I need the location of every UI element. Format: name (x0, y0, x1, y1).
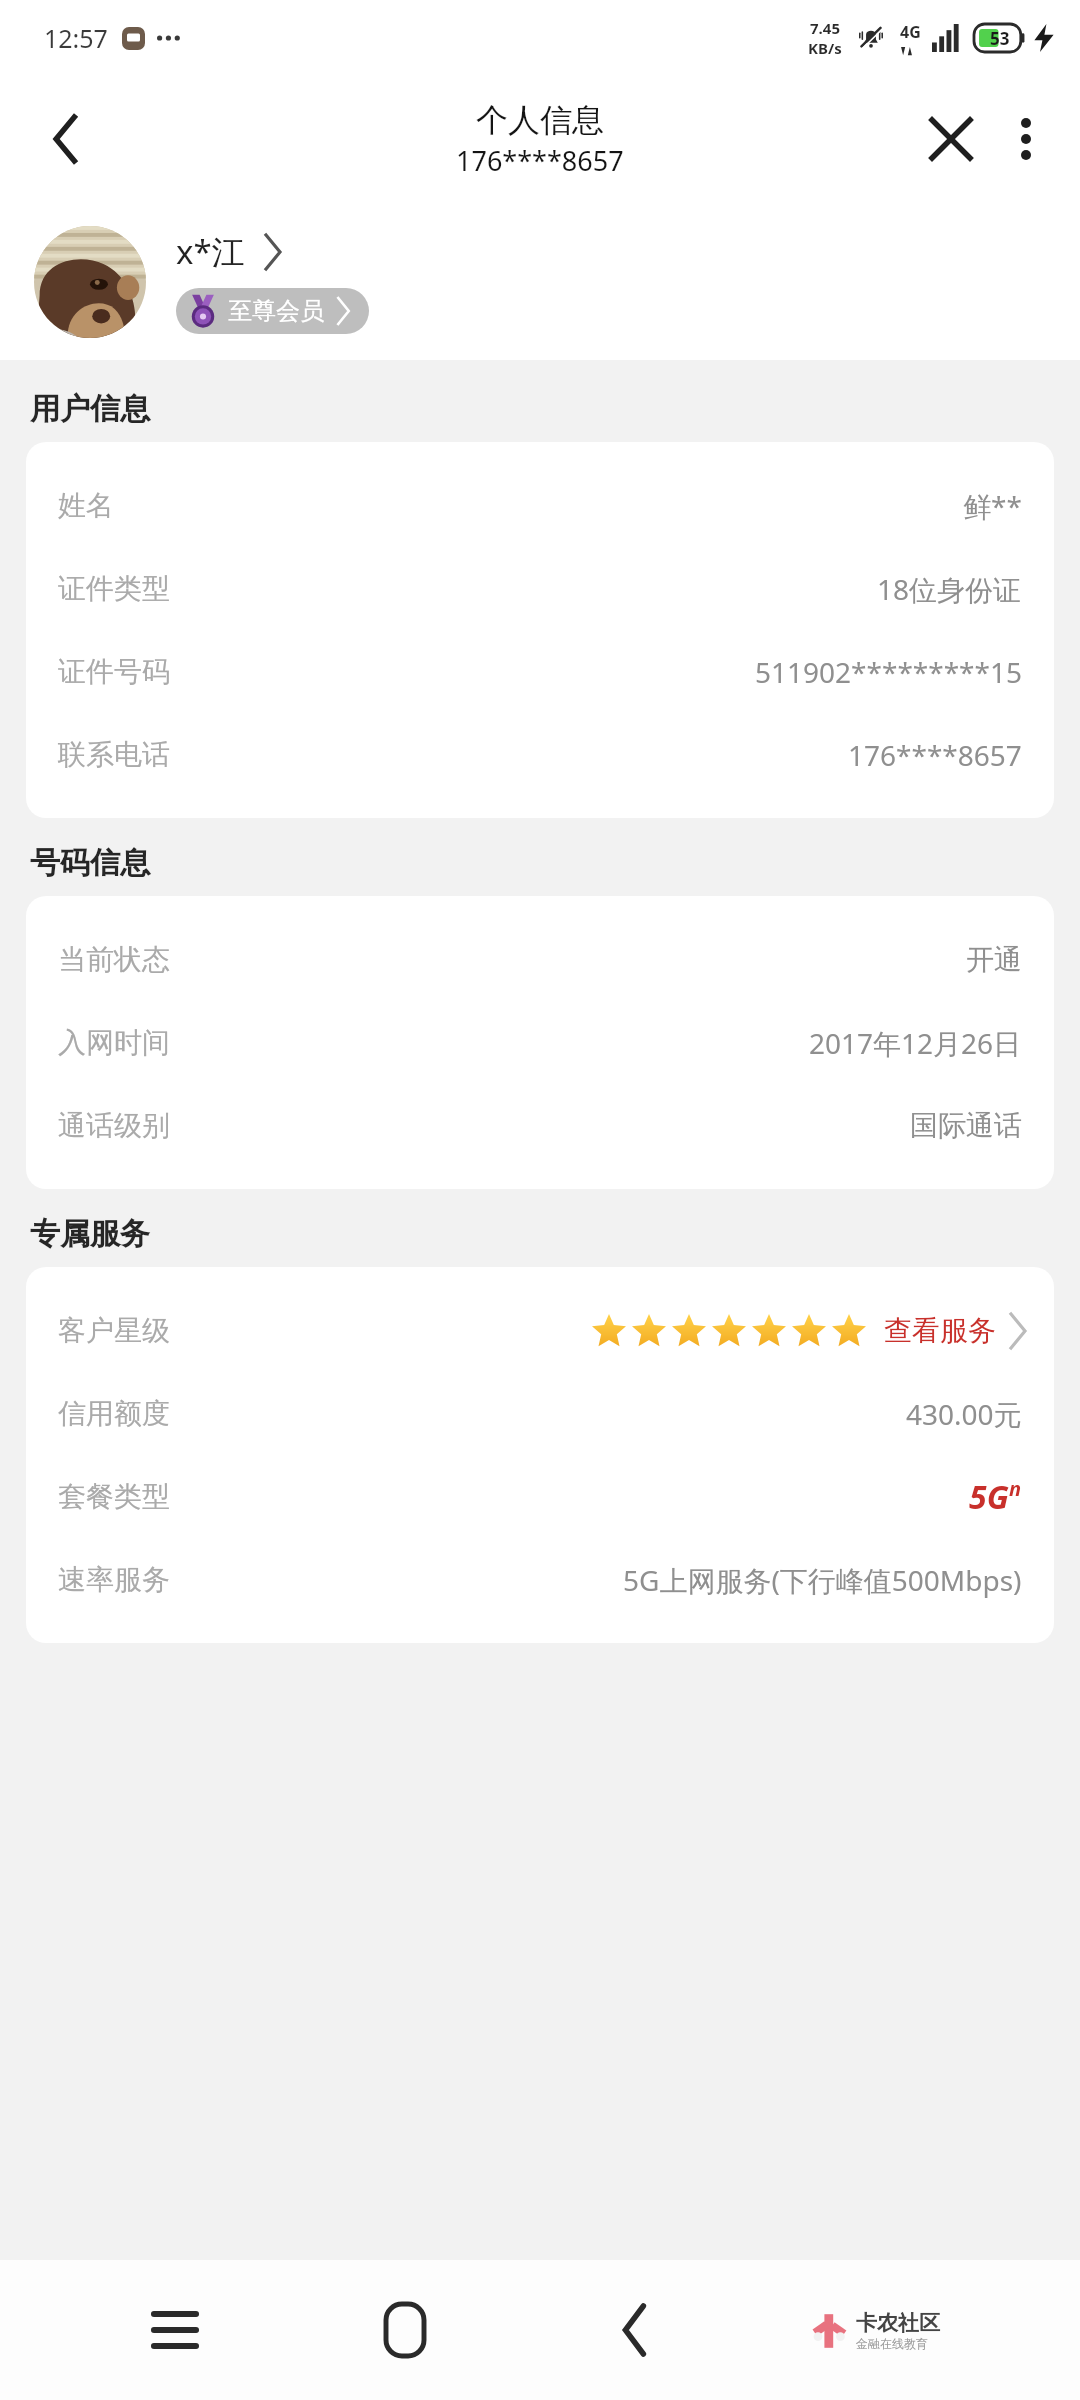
staticText: 当前状态 (58, 942, 170, 977)
staticText: x*江 (176, 229, 245, 274)
staticText: 鲜** (963, 487, 1022, 525)
staticText: 证件号码 (58, 654, 170, 689)
staticText: 姓名 (58, 488, 114, 523)
button[interactable]: 通话级别 (26, 1084, 1054, 1167)
button[interactable]: 姓名 (26, 464, 1054, 547)
button[interactable]: 客户星级 (26, 1289, 1054, 1372)
button[interactable]: Close (912, 100, 990, 178)
staticText: 18位身份证 (877, 570, 1022, 608)
staticText: n (1009, 1475, 1022, 1502)
staticText: 430.00元 (906, 1395, 1022, 1433)
staticText: 176****8657 (456, 142, 624, 179)
staticText: 2017年12月26日 (809, 1024, 1022, 1062)
staticText: 金融在线教育 (856, 2336, 928, 2351)
staticText: KB/s (808, 38, 842, 58)
staticText: 7.45 (810, 18, 840, 38)
button[interactable]: 至尊会员 (176, 288, 369, 334)
button[interactable]: More options (990, 103, 1062, 175)
staticText: 国际通话 (910, 1108, 1022, 1143)
staticText: 速率服务 (58, 1562, 170, 1597)
button[interactable]: Back (580, 2275, 690, 2385)
staticText: 专属服务 (30, 1215, 150, 1253)
staticText: 套餐类型 (58, 1479, 170, 1514)
button[interactable]: 当前状态 (26, 918, 1054, 1001)
button[interactable]: 套餐类型 (26, 1455, 1054, 1538)
staticText: 证件类型 (58, 571, 170, 606)
button[interactable]: 证件号码 (26, 630, 1054, 713)
button[interactable]: 速率服务 (26, 1538, 1054, 1621)
staticText: 信用额度 (58, 1396, 170, 1431)
staticText: 511902*********15 (755, 653, 1022, 691)
staticText: 客户星级 (58, 1313, 170, 1348)
staticText: 开通 (966, 942, 1022, 977)
staticText: 4G (900, 21, 921, 43)
staticText: 5G (969, 1475, 1009, 1519)
staticText: 至尊会员 (228, 296, 324, 326)
button[interactable]: Home (350, 2275, 460, 2385)
staticText: 通话级别 (58, 1108, 170, 1143)
staticText: 卡农社区 (856, 2310, 940, 2336)
staticText: 查看服务 (884, 1313, 996, 1348)
button[interactable]: 入网时间 (26, 1001, 1054, 1084)
button[interactable]: Back (26, 99, 106, 179)
button[interactable]: Recent apps (120, 2275, 230, 2385)
staticText: 联系电话 (58, 737, 170, 772)
button[interactable]: 联系电话 (26, 713, 1054, 796)
staticText: 12:57 (44, 21, 108, 55)
button[interactable]: 信用额度 (26, 1372, 1054, 1455)
staticText: 176****8657 (848, 736, 1022, 774)
staticText: 用户信息 (30, 390, 150, 428)
staticText: 5G上网服务(下行峰值500Mbps) (623, 1561, 1022, 1599)
staticText: 53 (990, 27, 1010, 50)
button[interactable]: x*江 (0, 203, 1080, 360)
staticText: 号码信息 (30, 844, 150, 882)
staticText: 入网时间 (58, 1025, 170, 1060)
button[interactable]: 证件类型 (26, 547, 1054, 630)
staticText: 个人信息 (476, 100, 604, 140)
